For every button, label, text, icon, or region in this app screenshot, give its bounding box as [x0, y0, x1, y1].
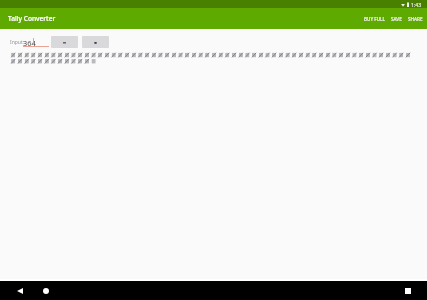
button[interactable]: Recent apps	[401, 284, 414, 297]
staticText: SAVE	[391, 16, 402, 22]
staticText: Tally Converter	[8, 14, 56, 23]
button[interactable]: Home	[39, 284, 52, 297]
button[interactable]: Copy	[82, 36, 109, 48]
button[interactable]: Input number	[23, 36, 49, 48]
button[interactable]: Back	[13, 284, 26, 297]
button[interactable]: BUY FULL	[361, 11, 388, 27]
staticText: 1:43	[411, 1, 422, 8]
staticText: SHARE	[408, 16, 423, 22]
button[interactable]: Clear	[51, 36, 78, 48]
staticText: 364	[23, 38, 36, 48]
button[interactable]: SHARE	[405, 11, 426, 27]
staticText: BUY FULL	[364, 16, 385, 22]
button[interactable]: SAVE	[388, 11, 405, 27]
staticText: Input:	[10, 39, 25, 46]
